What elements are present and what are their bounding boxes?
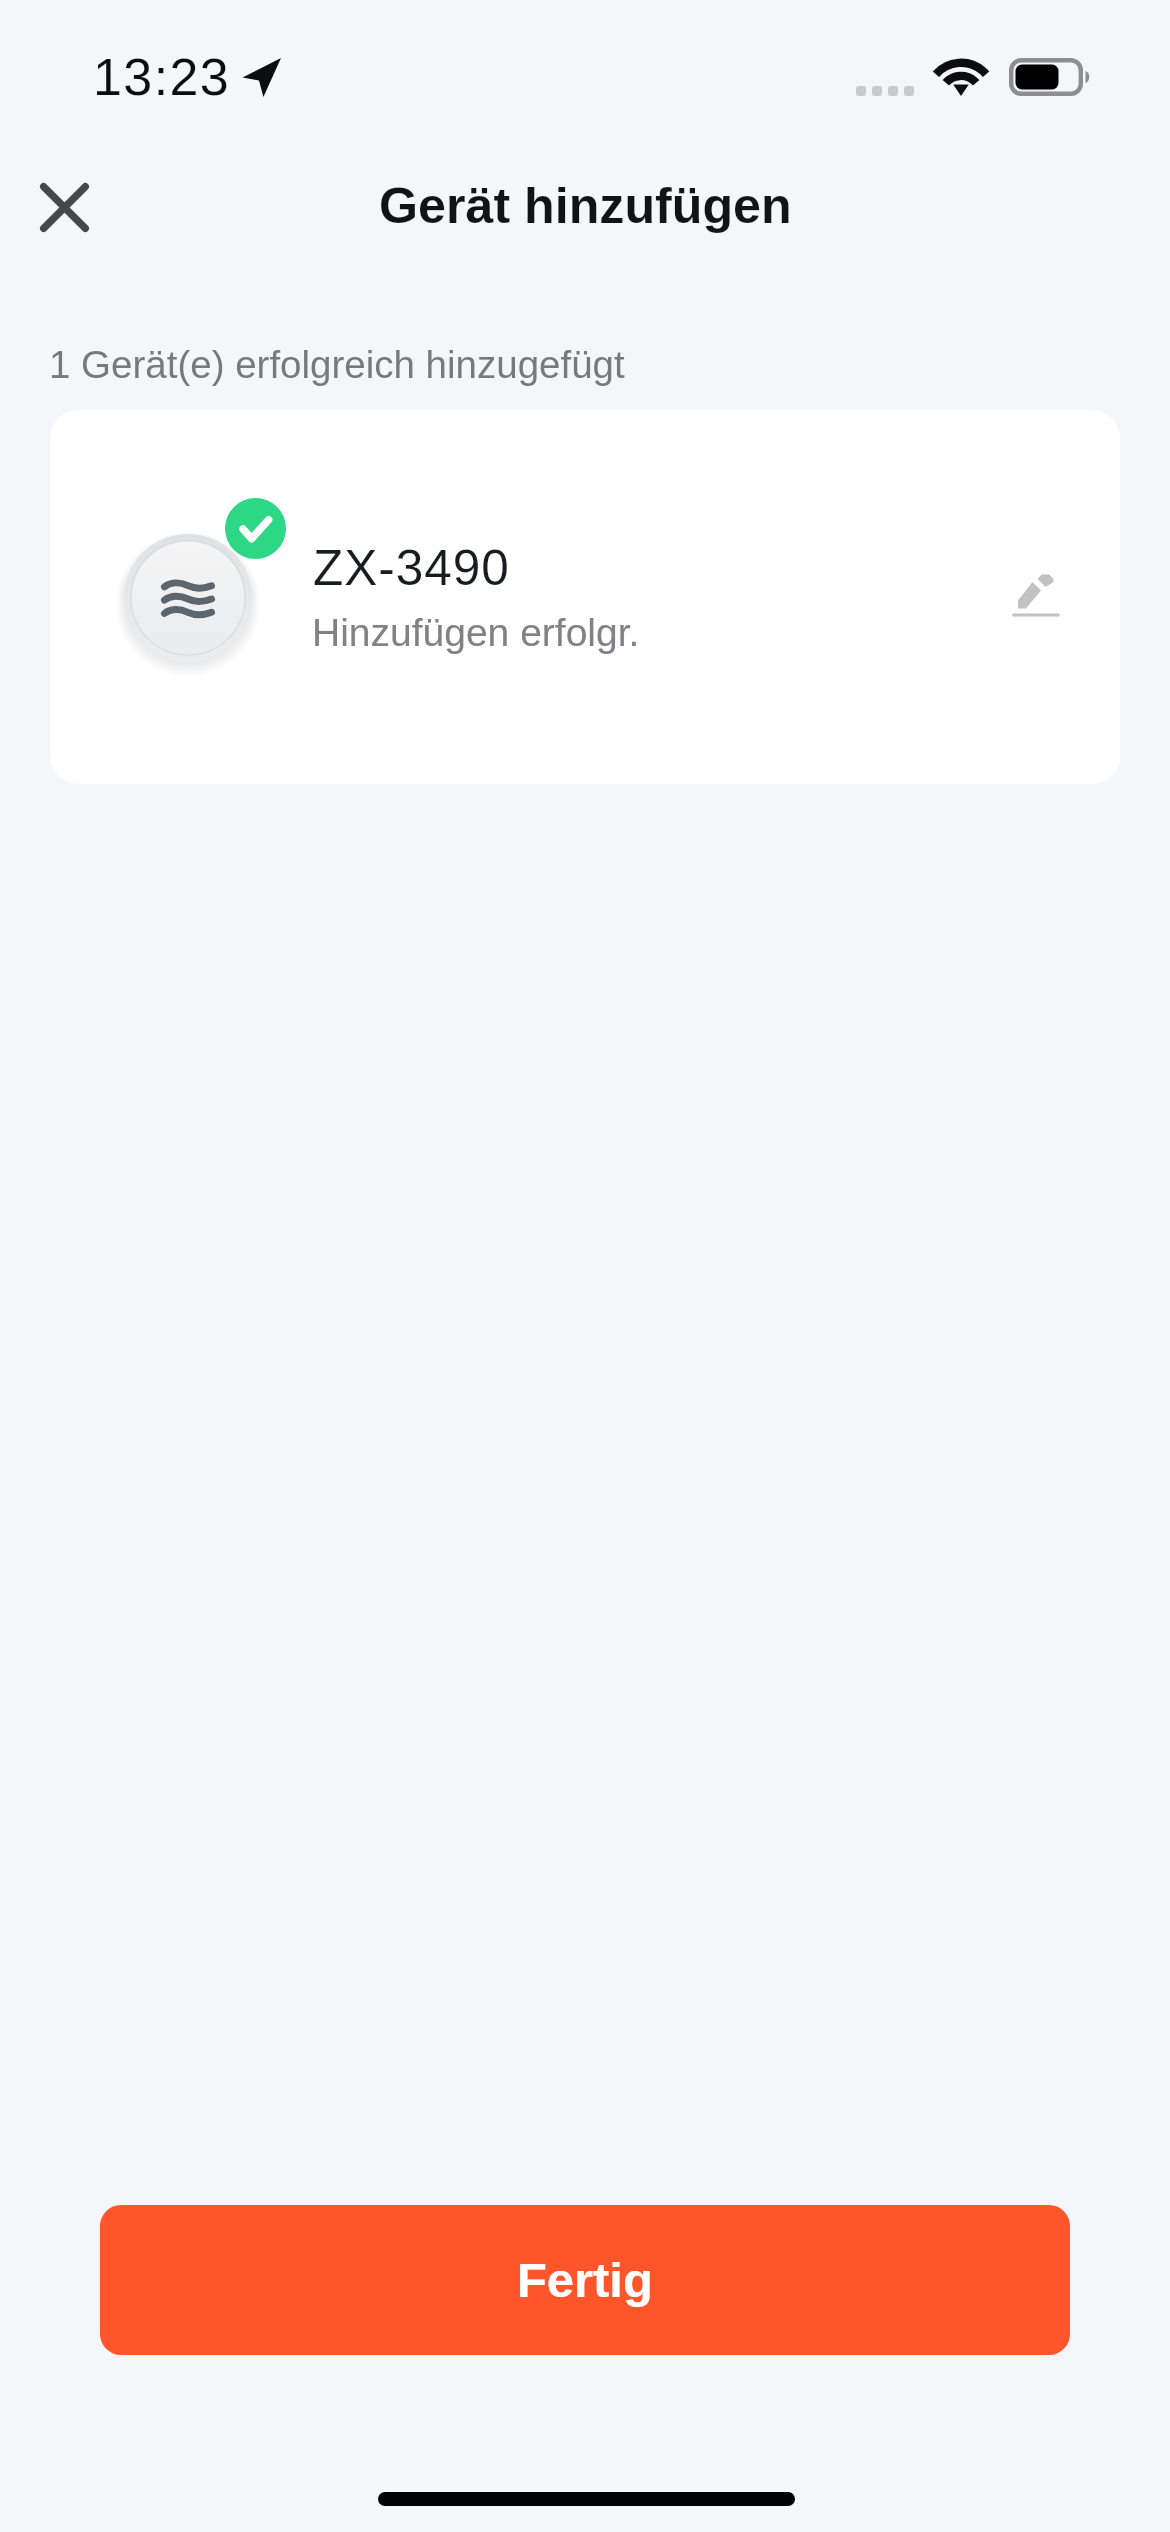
button[interactable]: Fertig bbox=[100, 2205, 1070, 2355]
staticText: Fertig bbox=[517, 2253, 653, 2308]
staticText: 1 Gerät(e) erfolgreich hinzugefügt bbox=[49, 343, 625, 386]
staticText: Gerät hinzufügen bbox=[379, 178, 792, 234]
staticText: 13:23 bbox=[93, 48, 231, 106]
staticText: Hinzufügen erfolgr. bbox=[312, 611, 640, 655]
button[interactable]: Edit bbox=[990, 550, 1082, 642]
button[interactable]: ZX-3490 bbox=[50, 410, 1120, 784]
staticText: ZX-3490 bbox=[313, 540, 510, 595]
button[interactable]: Close bbox=[24, 167, 104, 247]
